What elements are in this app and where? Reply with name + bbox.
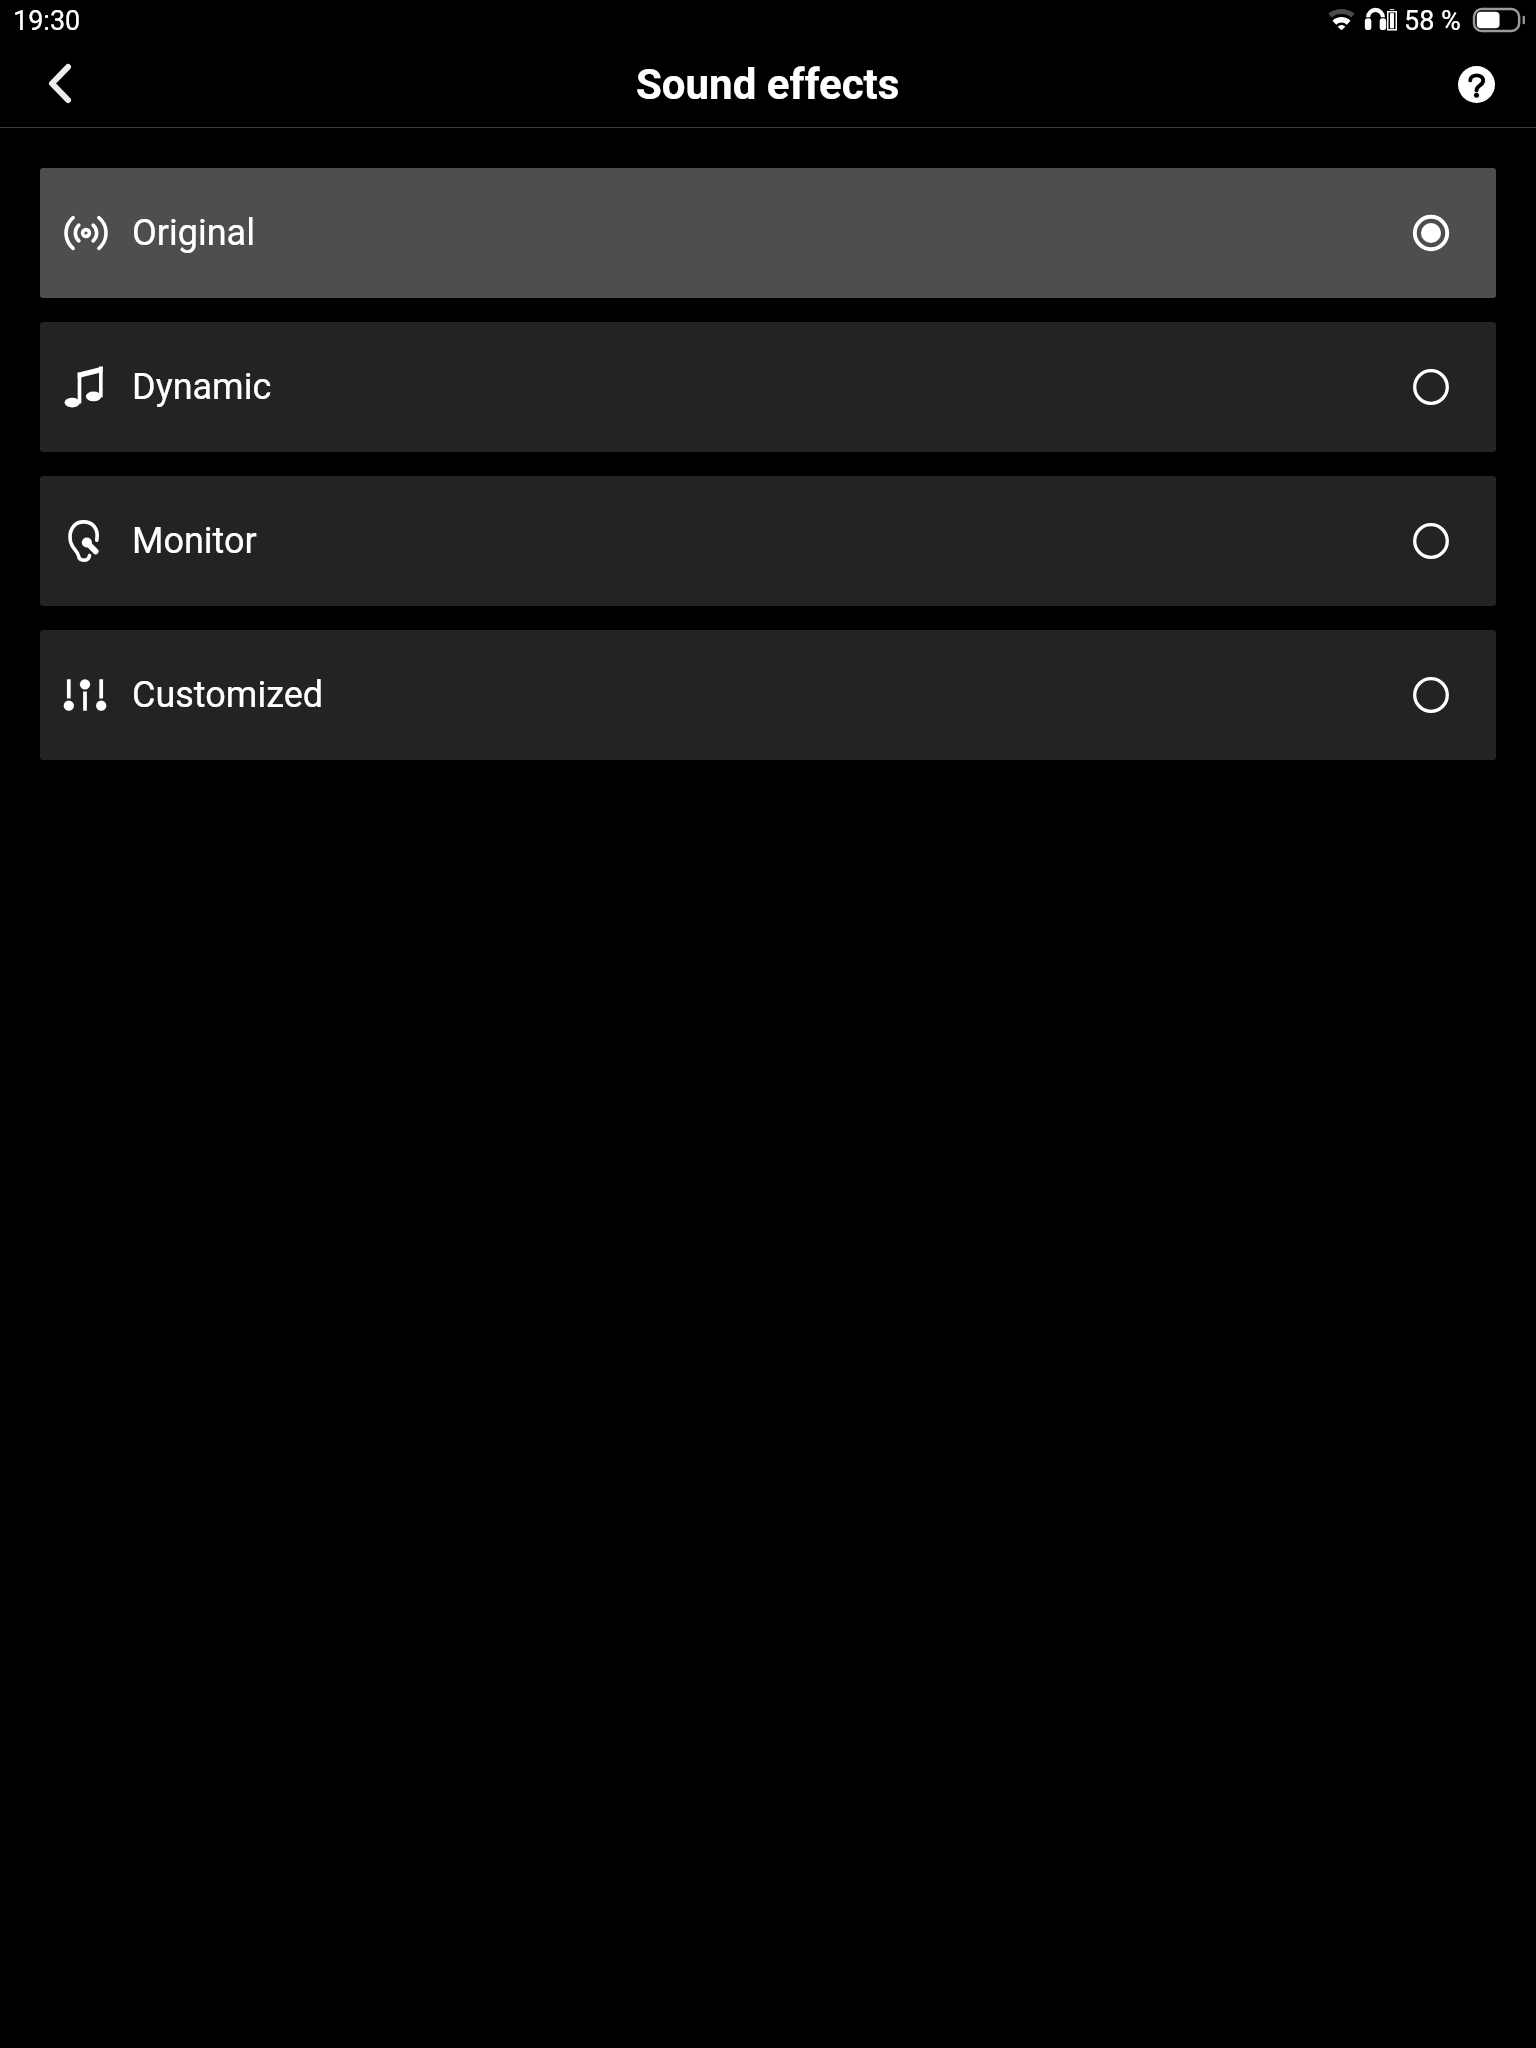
staticText: 58 % <box>1404 5 1461 37</box>
staticText: Dynamic <box>132 366 272 408</box>
button[interactable]: Customized <box>40 630 1496 760</box>
staticText: Monitor <box>132 520 257 562</box>
staticText: Original <box>132 212 255 254</box>
button[interactable]: Monitor <box>40 476 1496 606</box>
staticText: Customized <box>132 674 324 716</box>
button[interactable]: Back <box>14 40 106 127</box>
button[interactable]: Original <box>40 168 1496 298</box>
button[interactable]: Help <box>1434 42 1518 126</box>
staticText: Sound effects <box>636 60 900 109</box>
staticText: 19:30 <box>13 5 81 37</box>
button[interactable]: Dynamic <box>40 322 1496 452</box>
